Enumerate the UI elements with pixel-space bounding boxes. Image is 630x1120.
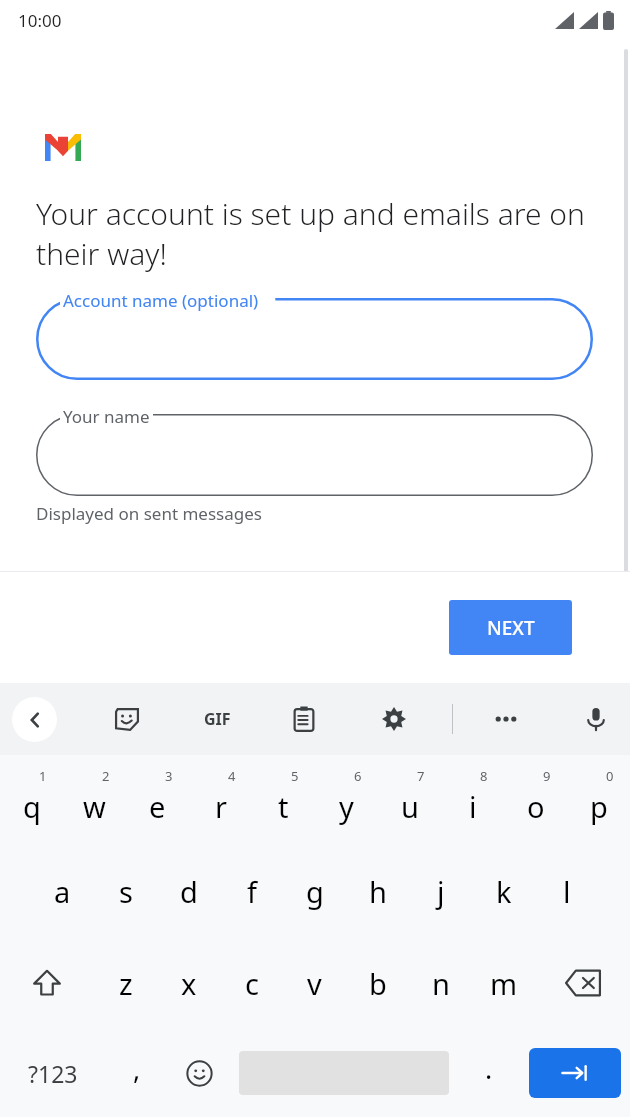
button[interactable]: Voice input (574, 697, 618, 741)
button[interactable]: Settings (372, 697, 416, 741)
button[interactable]: b (346, 937, 409, 1029)
staticText: u (401, 787, 419, 826)
staticText: v (307, 964, 322, 1003)
staticText: 1 (39, 767, 47, 785)
staticText: o (527, 787, 545, 826)
staticText: j (437, 872, 445, 911)
button[interactable]: Back (12, 697, 57, 742)
staticText: w (83, 787, 106, 826)
staticText: , (133, 1050, 141, 1087)
staticText: 10:00 (18, 9, 62, 32)
staticText: i (469, 787, 477, 826)
staticText: x (181, 964, 197, 1003)
button[interactable]: 1 (0, 755, 63, 845)
staticText: d (180, 872, 198, 911)
button[interactable]: 4 (189, 755, 252, 845)
staticText: GIF (204, 708, 231, 730)
staticText: k (496, 872, 512, 911)
button[interactable]: Stickers (105, 697, 149, 741)
staticText: m (490, 964, 518, 1003)
button[interactable]: a (31, 845, 94, 937)
staticText: t (278, 787, 289, 826)
button[interactable]: m (472, 937, 535, 1029)
button[interactable]: d (157, 845, 220, 937)
staticText: 4 (228, 767, 236, 785)
button[interactable]: Account name (optional) (36, 298, 593, 380)
button[interactable]: z (94, 937, 157, 1029)
staticText: 9 (543, 767, 551, 785)
button[interactable]: ?123 (0, 1029, 106, 1117)
button[interactable]: g (283, 845, 346, 937)
button[interactable]: f (220, 845, 283, 937)
button[interactable]: NEXT (449, 600, 572, 655)
button[interactable]: Backspace (535, 937, 630, 1029)
button[interactable]: k (472, 845, 535, 937)
button[interactable]: Your name (36, 414, 593, 496)
button[interactable]: Clipboard (282, 697, 326, 741)
staticText: Your account is set up and emails are on… (36, 193, 594, 274)
button[interactable]: j (409, 845, 472, 937)
staticText: Account name (optional) (63, 289, 259, 312)
staticText: . (485, 1050, 493, 1087)
staticText: 2 (102, 767, 110, 785)
staticText: 3 (165, 767, 173, 785)
button[interactable]: Shift (0, 937, 94, 1029)
staticText: r (215, 787, 227, 826)
button[interactable]: Next field (529, 1048, 621, 1098)
staticText: g (306, 872, 324, 911)
button[interactable]: 2 (63, 755, 126, 845)
button[interactable]: 0 (567, 755, 630, 845)
button[interactable]: 9 (504, 755, 567, 845)
button[interactable]: . (457, 1029, 520, 1117)
button[interactable]: n (409, 937, 472, 1029)
staticText: b (369, 964, 387, 1003)
staticText: s (119, 872, 133, 911)
button[interactable]: h (346, 845, 409, 937)
button[interactable]: 3 (126, 755, 189, 845)
button[interactable]: 5 (252, 755, 315, 845)
staticText: 0 (606, 767, 614, 785)
button[interactable]: 8 (441, 755, 504, 845)
staticText: y (339, 787, 354, 826)
button[interactable]: 7 (378, 755, 441, 845)
staticText: 7 (417, 767, 425, 785)
staticText: q (23, 787, 41, 826)
staticText: 6 (354, 767, 362, 785)
button[interactable]: GIF (192, 694, 242, 744)
button[interactable]: , (106, 1029, 168, 1117)
staticText: ?123 (28, 1058, 78, 1089)
staticText: z (119, 964, 133, 1003)
staticText: l (563, 872, 571, 911)
staticText: c (245, 964, 259, 1003)
staticText: Displayed on sent messages (36, 502, 262, 525)
staticText: a (54, 872, 71, 911)
button[interactable]: s (94, 845, 157, 937)
staticText: 8 (480, 767, 488, 785)
staticText: h (369, 872, 387, 911)
staticText: 5 (291, 767, 299, 785)
button[interactable]: v (283, 937, 346, 1029)
staticText: e (149, 787, 166, 826)
button[interactable]: Emoji (168, 1029, 231, 1117)
staticText: f (247, 872, 257, 911)
button[interactable]: More options (484, 697, 528, 741)
staticText: n (432, 964, 450, 1003)
button[interactable]: x (157, 937, 220, 1029)
staticText: Your name (63, 405, 150, 428)
staticText: NEXT (487, 615, 535, 641)
staticText: p (590, 787, 608, 826)
button[interactable]: l (535, 845, 598, 937)
button[interactable]: 6 (315, 755, 378, 845)
button[interactable]: c (220, 937, 283, 1029)
